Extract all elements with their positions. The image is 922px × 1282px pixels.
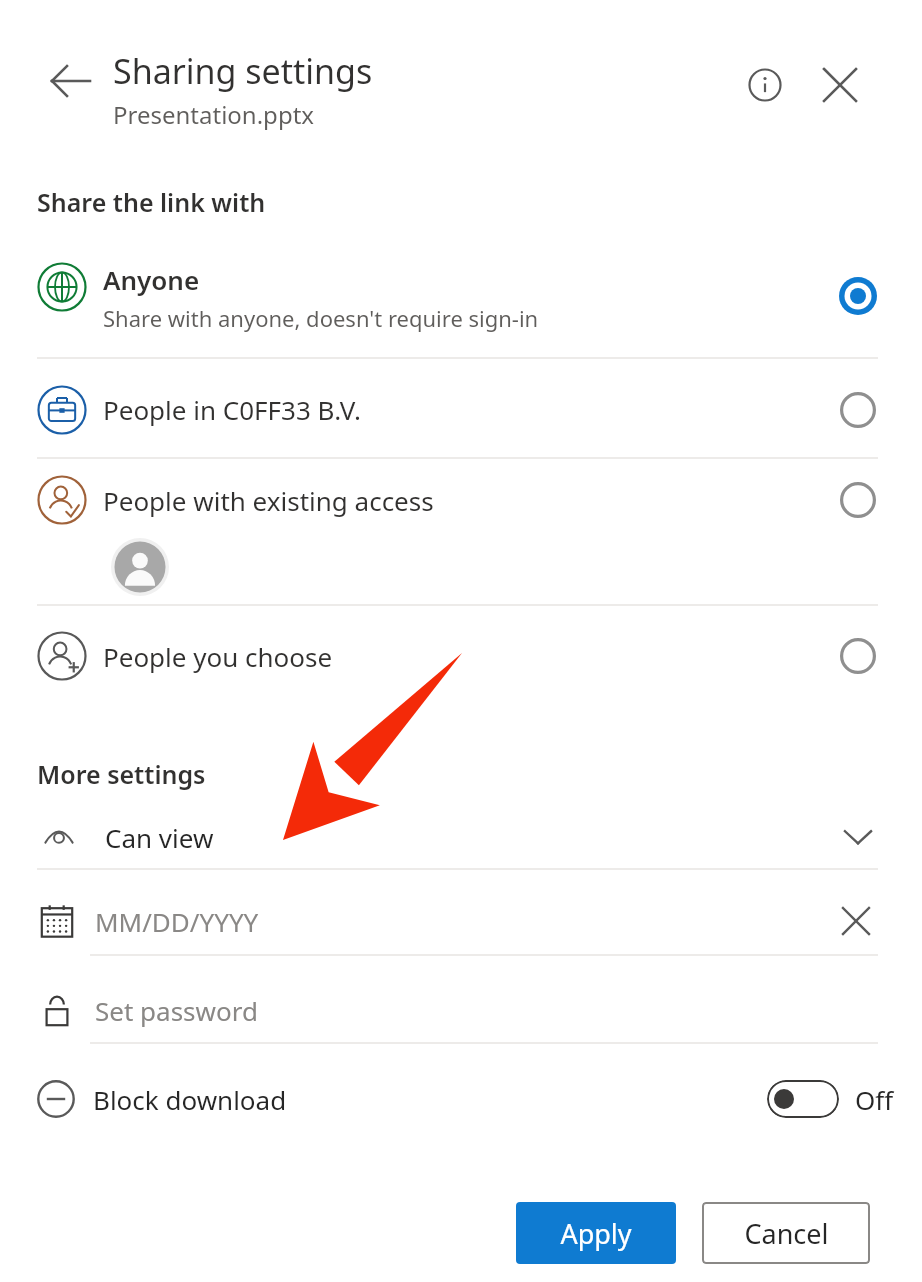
button[interactable]: Clear date <box>834 899 878 943</box>
button[interactable]: People with existing access <box>37 462 878 603</box>
staticText: Apply <box>560 1215 632 1252</box>
staticText: Cancel <box>744 1215 829 1252</box>
button[interactable]: Apply <box>516 1202 676 1264</box>
staticText: Share the link with <box>37 185 266 219</box>
button[interactable]: Cancel <box>702 1202 870 1264</box>
button[interactable]: Set password <box>37 978 878 1042</box>
button[interactable]: Block download toggle <box>767 1080 839 1118</box>
staticText: Share with anyone, doesn't require sign-… <box>103 303 539 333</box>
staticText: More settings <box>37 757 206 791</box>
button[interactable]: People in C0FF33 B.V. <box>37 362 878 457</box>
button[interactable]: MM/DD/YYYY <box>37 888 878 954</box>
button[interactable]: Info <box>742 62 788 108</box>
staticText: People in C0FF33 B.V. <box>103 392 361 427</box>
staticText: Anyone <box>103 262 200 297</box>
button[interactable]: Block download <box>37 1068 878 1130</box>
button[interactable]: Close <box>815 60 865 110</box>
button[interactable]: Can view <box>37 806 878 868</box>
staticText: Can view <box>105 820 214 855</box>
staticText: Off <box>855 1082 894 1117</box>
staticText: Sharing settings <box>113 48 373 94</box>
staticText: Presentation.pptx <box>113 98 314 131</box>
staticText: People with existing access <box>103 483 434 518</box>
button[interactable]: Back <box>44 58 98 104</box>
button[interactable]: People you choose <box>37 609 878 703</box>
staticText: MM/DD/YYYY <box>95 904 259 939</box>
staticText: Block download <box>93 1082 287 1117</box>
staticText: Set password <box>95 993 258 1028</box>
button[interactable]: Anyone <box>37 248 878 356</box>
staticText: People you choose <box>103 639 333 674</box>
